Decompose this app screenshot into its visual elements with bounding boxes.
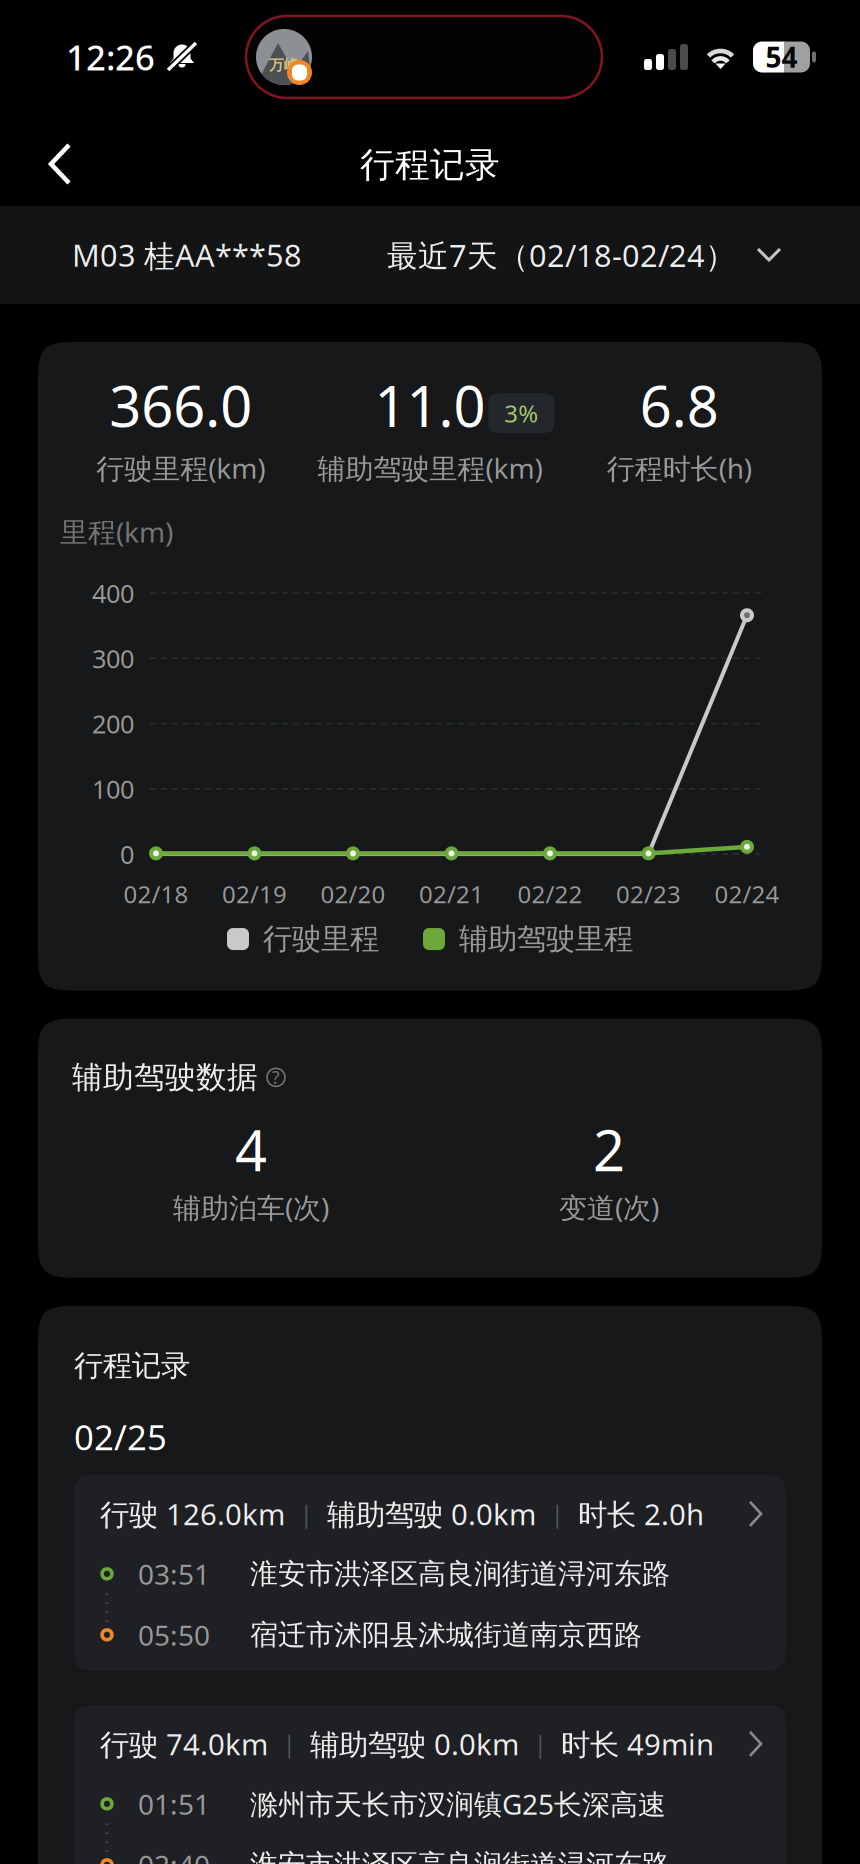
staticText: 行驶里程: [263, 921, 379, 957]
staticText: 3%: [504, 397, 538, 429]
staticText: 淮安市洪泽区高良涧街道浔河东路: [250, 1557, 670, 1591]
staticText: 淮安市洪泽区高良涧街道浔河东路: [250, 1848, 670, 1864]
staticText: 行驶 74.0km: [100, 1724, 268, 1763]
staticText: 辅助驾驶里程: [459, 921, 633, 957]
staticText: 02/22: [517, 878, 582, 910]
staticText: 行程记录: [360, 144, 500, 186]
staticText: 200: [92, 707, 134, 740]
staticText: |: [300, 1499, 312, 1529]
button[interactable]: 行驶 74.0km: [74, 1705, 786, 1864]
button[interactable]: M03 桂AA***58: [0, 209, 312, 301]
button[interactable]: Back: [0, 115, 102, 205]
staticText: ?: [272, 1066, 280, 1089]
staticText: 4: [235, 1112, 267, 1187]
staticText: 宿迁市沭阳县沭城街道南京西路: [250, 1618, 642, 1652]
staticText: 54: [765, 38, 797, 76]
staticText: 辅助驾驶数据: [72, 1058, 258, 1096]
staticText: 02/19: [222, 878, 287, 910]
staticText: 2: [593, 1112, 625, 1187]
staticText: 03:51: [138, 1555, 210, 1592]
staticText: 行程时长(h): [607, 449, 752, 487]
staticText: 行驶 126.0km: [100, 1494, 285, 1533]
staticText: 辅助泊车(次): [173, 1189, 329, 1226]
staticText: 400: [92, 576, 134, 610]
staticText: 02/23: [616, 878, 681, 910]
staticText: 366.0: [109, 368, 252, 442]
staticText: 01:51: [138, 1785, 210, 1822]
staticText: 02/21: [419, 878, 484, 910]
staticText: |: [534, 1729, 546, 1759]
staticText: 滁州市天长市汊涧镇G25长深高速: [250, 1785, 666, 1822]
staticText: 02/25: [74, 1414, 167, 1460]
staticText: 6.8: [640, 368, 719, 442]
staticText: 行程记录: [74, 1348, 190, 1384]
staticText: 变道(次): [559, 1189, 659, 1226]
button[interactable]: 行驶 126.0km: [74, 1475, 786, 1671]
staticText: |: [283, 1729, 295, 1759]
staticText: 02/20: [320, 878, 385, 910]
staticText: 02:40: [138, 1846, 210, 1864]
staticText: 0: [120, 837, 134, 871]
staticText: 300: [92, 641, 134, 675]
staticText: M03 桂AA***58: [72, 235, 302, 275]
staticText: 时长 49min: [561, 1724, 714, 1763]
staticText: 里程(km): [60, 513, 173, 550]
staticText: 100: [92, 772, 134, 806]
staticText: 万峰: [269, 56, 299, 74]
staticText: |: [551, 1499, 563, 1529]
staticText: 11.0: [374, 368, 485, 442]
button[interactable]: 最近7天（02/18-02/24）: [377, 209, 860, 301]
staticText: 02/24: [714, 878, 779, 910]
staticText: 最近7天（02/18-02/24）: [387, 235, 736, 275]
staticText: 05:50: [138, 1616, 210, 1653]
staticText: 辅助驾驶 0.0km: [327, 1494, 536, 1533]
staticText: 辅助驾驶里程(km): [317, 449, 542, 487]
staticText: 时长 2.0h: [578, 1494, 704, 1533]
staticText: 辅助驾驶 0.0km: [310, 1724, 519, 1763]
staticText: 02/18: [123, 878, 188, 910]
staticText: 12:26: [66, 34, 155, 80]
staticText: 行驶里程(km): [96, 449, 265, 487]
